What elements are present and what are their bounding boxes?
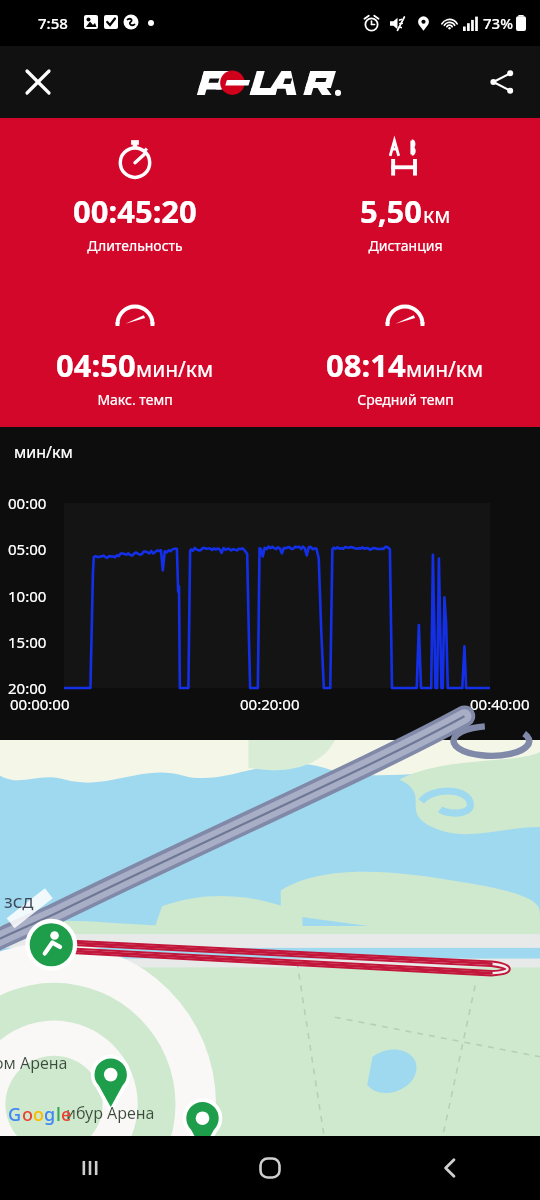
button[interactable]: Home [180, 1136, 360, 1200]
button[interactable]: Back [360, 1136, 540, 1200]
staticText: 5,50 [360, 190, 423, 232]
staticText: 20:00 [8, 678, 47, 698]
button[interactable]: Close [14, 58, 62, 106]
staticText: e [61, 1102, 72, 1127]
staticText: 00:00:00 [10, 694, 70, 714]
staticText: 04:50 [56, 344, 136, 386]
button[interactable]: Route map [0, 740, 540, 1136]
staticText: 08:14 [326, 344, 406, 386]
staticText: км [423, 201, 451, 230]
button[interactable]: 08:14 [270, 272, 540, 427]
staticText: l [56, 1102, 61, 1127]
staticText: ЗСД [4, 892, 34, 912]
staticText: 00:00 [8, 493, 47, 513]
staticText: o [22, 1102, 33, 1127]
staticText: 00:45:20 [73, 190, 197, 232]
staticText: ибур Арена [66, 1102, 155, 1124]
staticText: g [44, 1102, 56, 1127]
staticText: G [8, 1102, 22, 1127]
staticText: 15:00 [8, 632, 47, 652]
staticText: Дистанция [368, 236, 443, 255]
button[interactable]: 04:50 [0, 272, 270, 427]
staticText: Макс. темп [97, 390, 173, 409]
staticText: мин/км [406, 355, 484, 384]
button[interactable]: Share [478, 58, 526, 106]
staticText: мин/км [14, 441, 73, 463]
button[interactable]: Recents [0, 1136, 180, 1200]
staticText: 00:40:00 [470, 694, 530, 714]
button[interactable]: 5,50 [270, 118, 540, 272]
staticText: 05:00 [8, 539, 47, 559]
staticText: ом Арена [0, 1052, 68, 1074]
staticText: o [33, 1102, 44, 1127]
staticText: мин/км [136, 355, 214, 384]
staticText: 10:00 [8, 586, 47, 606]
staticText: 73% [483, 13, 513, 33]
staticText: 7:58 [38, 13, 68, 33]
staticText: Длительность [87, 236, 183, 255]
button[interactable]: 00:45:20 [0, 118, 270, 272]
staticText: 00:20:00 [240, 694, 300, 714]
staticText: Средний темп [357, 390, 454, 409]
